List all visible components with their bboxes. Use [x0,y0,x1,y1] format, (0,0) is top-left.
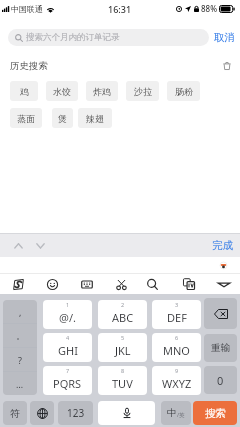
button[interactable]: 表情 [42,274,62,294]
staticText: @/. [59,310,76,325]
staticText: 搜索六个月内的订单记录 [26,32,120,43]
button[interactable]: 4 [43,333,92,362]
button[interactable]: 中 [161,401,191,425]
button[interactable]: 符 [3,401,27,425]
button[interactable]: 2 [98,300,147,329]
button[interactable]: 煲 [52,108,73,128]
button[interactable]: 1 [43,300,92,329]
staticText: 2 [121,301,125,308]
button[interactable]: 完成 [204,233,240,257]
staticText: 3 [175,301,179,308]
staticText: 符 [10,407,20,420]
button[interactable]: 3 [152,300,201,329]
staticText: JKL [115,343,131,358]
staticText: 5 [121,334,125,341]
staticText: MNO [163,343,190,358]
button[interactable]: 语音输入 [98,401,155,425]
button[interactable]: , [3,300,37,323]
button[interactable]: 123 [58,401,93,425]
staticText: 中国联通 [11,4,43,14]
button[interactable]: 清空历史搜索 [219,58,234,73]
staticText: 4 [66,334,70,341]
button[interactable]: 蒸面 [10,108,42,128]
button[interactable]: 取消 [210,29,238,46]
staticText: 蒸面 [17,113,35,124]
button[interactable]: 删除 [204,298,237,329]
button[interactable]: 沙拉 [126,81,159,101]
button[interactable]: 0 [204,366,237,394]
button[interactable]: 6 [152,333,201,362]
button[interactable]: … [3,372,37,395]
button[interactable]: 切换语言 [30,401,54,425]
button[interactable]: 肠粉 [167,81,200,101]
button[interactable]: 8 [98,366,147,395]
button[interactable]: 搜索六个月内的订单记录 [8,29,209,46]
button[interactable]: 炸鸡 [86,81,118,101]
staticText: 辣翅 [86,113,104,124]
button[interactable]: 输入法设置 [8,274,28,294]
staticText: TUV [112,376,133,391]
staticText: 重输 [211,342,230,354]
staticText: ABC [112,310,134,325]
staticText: … [16,378,24,390]
staticText: 123 [67,406,85,420]
staticText: 历史搜索 [10,60,48,72]
staticText: 炸鸡 [93,86,111,97]
staticText: DEF [167,310,187,325]
button[interactable]: 重输 [204,334,237,362]
staticText: WXYZ [162,376,192,391]
staticText: 。 [16,330,25,341]
button[interactable]: 下一个 [32,237,48,253]
button[interactable]: 。 [3,324,37,347]
staticText: 6 [175,334,179,341]
button[interactable]: 水饺 [46,81,78,101]
staticText: /英 [177,411,185,419]
button[interactable]: 键盘设置 [77,274,97,294]
button[interactable]: 剪贴板 [179,274,199,294]
staticText: 肠粉 [175,86,193,97]
staticText: 中 [167,407,177,419]
button[interactable]: 7 [43,366,92,395]
staticText: 0 [217,373,224,388]
button[interactable]: 鸡 [10,81,38,101]
staticText: , [19,306,22,318]
staticText: 搜索 [205,407,226,420]
staticText: 完成 [212,239,233,252]
staticText: 1 [66,301,70,308]
staticText: GHI [58,343,78,358]
staticText: 7 [66,367,70,374]
staticText: 8 [121,367,125,374]
button[interactable]: 辣翅 [78,108,112,128]
button[interactable]: ? [3,348,37,371]
staticText: 鸡 [20,86,29,97]
button[interactable]: 上一个 [10,237,26,253]
staticText: 9 [175,367,179,374]
button[interactable]: 剪切 [111,274,131,294]
staticText: ? [18,354,22,366]
staticText: 取消 [214,31,235,44]
button[interactable]: 收起键盘 [214,274,234,294]
staticText: 煲 [58,113,67,124]
staticText: 88% [201,3,217,14]
staticText: 沙拉 [134,86,152,97]
button[interactable]: 搜索 [142,274,162,294]
button[interactable]: 9 [152,366,201,395]
staticText: 16:31 [108,3,132,15]
staticText: 水饺 [53,86,71,97]
button[interactable]: 5 [98,333,147,362]
staticText: PQRS [53,376,82,391]
button[interactable]: 搜索 [193,401,237,425]
